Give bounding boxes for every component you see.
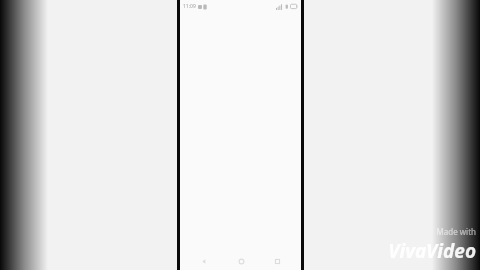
button[interactable]: Home [228, 252, 254, 270]
staticText: VivaVideo [388, 238, 476, 264]
button[interactable]: Recent apps [264, 252, 290, 270]
staticText: 11:09 [183, 3, 196, 10]
staticText: Made with [436, 226, 476, 237]
